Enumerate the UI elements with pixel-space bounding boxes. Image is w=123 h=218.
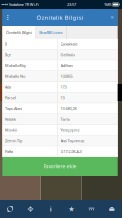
staticText: ★ — [68, 205, 74, 213]
staticText: Zemin Tip — [5, 138, 22, 143]
staticText: Yeniçeşme — [61, 127, 80, 133]
button[interactable]: Favorilere ekle — [2, 157, 118, 176]
staticText: %85 — [104, 2, 111, 7]
staticText: Öznitelik Bilgisi — [37, 13, 84, 21]
button[interactable]: Locate me — [20, 200, 41, 218]
staticText: 23:57 — [67, 2, 76, 7]
staticText: 13 — [61, 95, 65, 100]
button[interactable]: Refresh — [0, 200, 20, 218]
staticText: Mahalle No — [5, 74, 25, 79]
staticText: Vodafone TR Wi-Fi — [8, 2, 39, 7]
staticText: Gelibolu — [61, 52, 75, 57]
staticText: Parsel — [5, 95, 16, 100]
staticText: 132855 — [61, 74, 73, 79]
staticText: 13.680,28 — [61, 106, 77, 111]
button[interactable]: Öznitelik Bilgisi — [2, 26, 36, 39]
button[interactable]: Favourites — [61, 200, 81, 218]
staticText: Pafta — [5, 149, 13, 154]
staticText: Mevkii — [5, 127, 17, 133]
button[interactable]: Measure — [81, 200, 102, 218]
staticText: Favorilere ekle — [44, 163, 77, 170]
staticText: Nitelik — [5, 117, 16, 122]
button[interactable]: Info — [41, 200, 61, 218]
button[interactable]: Bina/BB Listesi — [36, 26, 66, 39]
staticText: Ada — [5, 84, 11, 90]
staticText: Öznitelik Bilgisi — [6, 30, 32, 35]
staticText: Tarla — [61, 117, 70, 122]
staticText: G17-C-06-A-3 — [61, 149, 82, 154]
staticText: Bina/BB Listesi — [39, 30, 63, 35]
button[interactable]: Menu — [2, 9, 13, 26]
button[interactable]: Print — [102, 200, 122, 218]
staticText: 173 — [61, 84, 67, 90]
staticText: Mahalle/Köy — [5, 63, 26, 68]
staticText: İl — [5, 41, 7, 47]
staticText: ✕ — [110, 15, 114, 20]
button[interactable]: Close — [107, 9, 118, 26]
staticText: Tapu Alanı — [5, 106, 22, 111]
staticText: Çanakkale — [61, 41, 78, 47]
staticText: Ana Taşınmaz — [61, 138, 85, 143]
staticText: İlçe — [5, 52, 11, 57]
staticText: Adilhan — [61, 63, 73, 68]
